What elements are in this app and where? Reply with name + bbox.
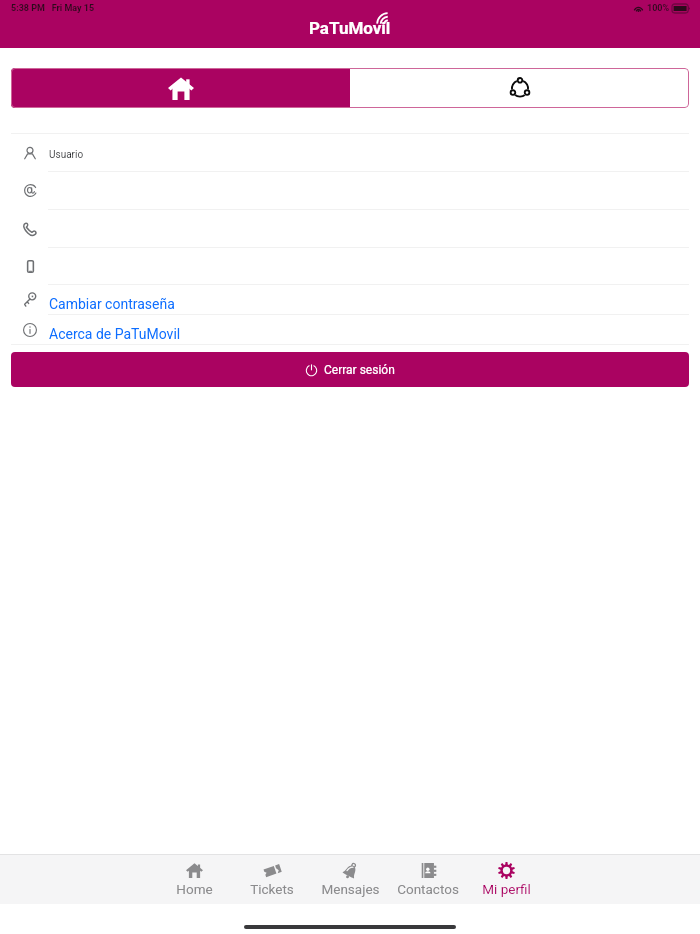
- button[interactable]: Usuario: [11, 134, 689, 171]
- button[interactable]: [11, 210, 689, 247]
- staticText: PaTuMovil: [309, 18, 391, 38]
- staticText: 100%: [647, 3, 670, 14]
- button[interactable]: Mi perfil: [467, 855, 545, 904]
- button[interactable]: [11, 172, 689, 209]
- button[interactable]: Contactos: [389, 855, 467, 904]
- button[interactable]: Cambiar contraseña: [11, 285, 689, 314]
- button[interactable]: Compartir: [350, 68, 689, 108]
- button[interactable]: Mensajes: [311, 855, 389, 904]
- staticText: Home: [176, 881, 213, 897]
- staticText: Mi perfil: [482, 881, 531, 897]
- button[interactable]: Cerrar sesión: [11, 352, 689, 387]
- staticText: Usuario: [49, 149, 84, 161]
- button[interactable]: Tickets: [233, 855, 311, 904]
- staticText: Tickets: [250, 881, 294, 897]
- button[interactable]: Acerca de PaTuMovil: [11, 315, 689, 344]
- button[interactable]: Home: [155, 855, 233, 904]
- staticText: Acerca de PaTuMovil: [49, 326, 181, 342]
- staticText: Cerrar sesión: [324, 363, 395, 377]
- staticText: Mensajes: [321, 881, 380, 897]
- staticText: Cambiar contraseña: [49, 296, 175, 312]
- staticText: 5:38 PM Fri May 15: [11, 3, 95, 14]
- button[interactable]: [11, 248, 689, 284]
- button[interactable]: Inicio: [11, 68, 350, 108]
- staticText: Contactos: [397, 881, 459, 897]
